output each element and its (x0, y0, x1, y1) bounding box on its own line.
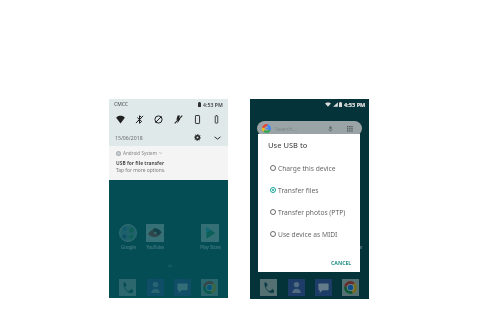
staticText: Charge this device (278, 164, 336, 173)
button[interactable]: Expand (212, 132, 223, 143)
button[interactable]: Search... (257, 121, 362, 136)
button[interactable]: Transfer photos (PTP) (258, 201, 360, 223)
staticText: YouTube (146, 244, 164, 250)
staticText: Android System (123, 150, 157, 156)
button[interactable]: YouTube (143, 224, 167, 250)
staticText: CANCEL (331, 259, 352, 266)
staticText: 4:53 PM (203, 101, 223, 108)
button[interactable]: Wi-Fi (112, 111, 129, 128)
staticText: CMCC (114, 101, 129, 108)
button[interactable]: Auto rotate (189, 111, 206, 128)
button[interactable]: Battery saver (208, 111, 225, 128)
staticText: Use device as MIDI (278, 230, 338, 239)
button[interactable]: Play Store (339, 224, 363, 250)
button[interactable]: Messages (174, 279, 191, 296)
button[interactable]: Google (257, 224, 281, 250)
button[interactable]: Contacts (288, 279, 305, 296)
button[interactable]: Bluetooth off (131, 111, 148, 128)
staticText: USB for file transfer (116, 160, 165, 167)
staticText: Play Store (341, 244, 362, 250)
button[interactable]: Google (116, 224, 140, 250)
staticText: Tap for more options. (116, 167, 166, 174)
staticText: 15/06/2018 (115, 134, 143, 141)
staticText: Search... (275, 125, 298, 133)
staticText: 4:53 PM (344, 101, 366, 109)
staticText: Use USB to (268, 140, 308, 150)
button[interactable]: Flashlight off (170, 111, 187, 128)
button[interactable]: Do not disturb (150, 111, 167, 128)
button[interactable]: Use device as MIDI (258, 223, 360, 245)
button[interactable]: Play Store (198, 224, 222, 250)
button[interactable]: Chrome (201, 279, 218, 296)
button[interactable]: Charge this device (258, 157, 360, 179)
button[interactable]: YouTube (284, 224, 308, 250)
staticText: Transfer photos (PTP) (278, 208, 346, 217)
button[interactable]: Contacts (147, 279, 164, 296)
button[interactable]: Chrome (342, 279, 359, 296)
button[interactable]: Transfer files (258, 179, 360, 201)
staticText: Transfer files (278, 186, 319, 195)
button[interactable]: Android System (109, 146, 228, 180)
button[interactable]: Phone (260, 279, 277, 296)
staticText: Play Store (200, 244, 221, 250)
button[interactable]: Phone (119, 279, 136, 296)
button[interactable]: Settings (192, 132, 203, 143)
button[interactable]: CANCEL (328, 257, 355, 268)
button[interactable]: Messages (315, 279, 332, 296)
staticText: Google (121, 244, 136, 250)
